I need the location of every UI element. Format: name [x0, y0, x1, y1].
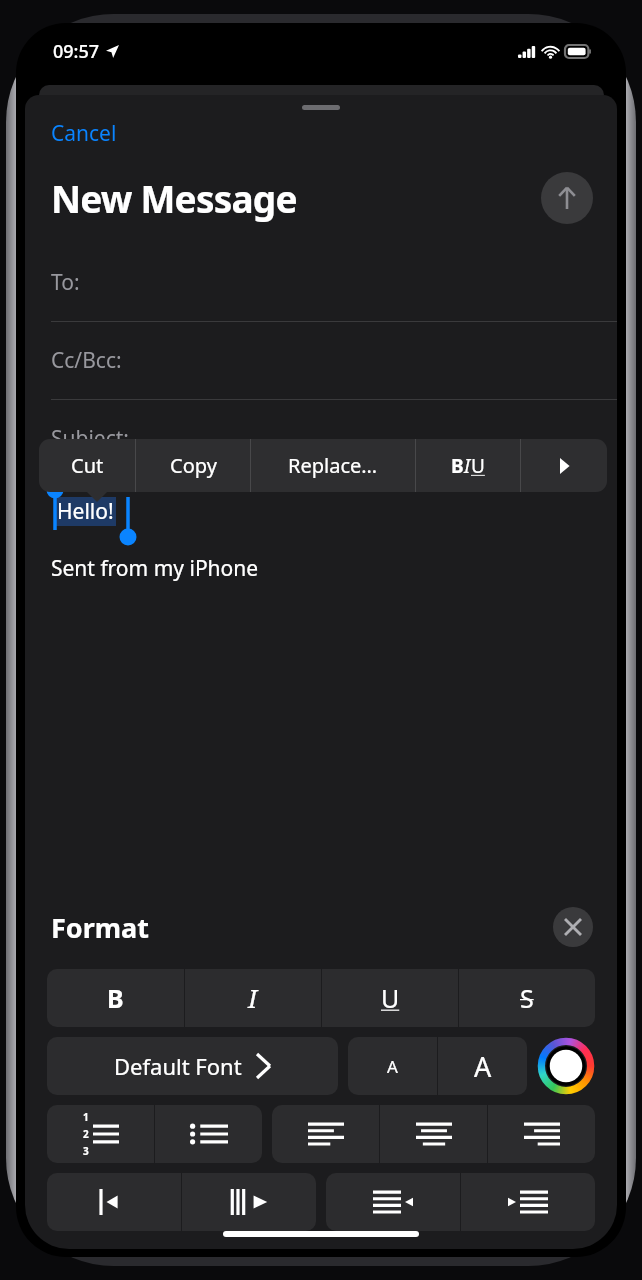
button[interactable]: Decrease indent — [326, 1173, 460, 1231]
staticText: Subject: — [51, 424, 129, 453]
staticText: Sent from my iPhone — [51, 554, 259, 583]
button[interactable]: I — [185, 969, 321, 1027]
staticText: Replace… — [288, 452, 378, 479]
button[interactable]: To: — [25, 244, 617, 322]
staticText: 1 — [83, 1110, 89, 1124]
button[interactable]: Replace… — [251, 439, 415, 492]
button[interactable]: A — [438, 1037, 527, 1095]
button[interactable]: Cancel — [51, 117, 117, 150]
button[interactable]: S — [459, 969, 595, 1027]
button[interactable]: Numbered list — [47, 1105, 154, 1163]
button[interactable]: Cut — [39, 439, 135, 492]
staticText: Cancel — [51, 119, 117, 148]
button[interactable]: A — [348, 1037, 437, 1095]
button[interactable]: B — [47, 969, 184, 1027]
staticText: B — [451, 453, 464, 479]
staticText: To: — [51, 268, 80, 297]
staticText: S — [520, 981, 534, 1015]
staticText: U — [381, 981, 400, 1015]
staticText: A — [387, 1055, 398, 1078]
button[interactable]: Align right — [488, 1105, 595, 1163]
staticText: A — [474, 1048, 492, 1085]
staticText: B — [107, 981, 124, 1015]
staticText: U — [471, 453, 485, 479]
button[interactable]: B — [416, 439, 520, 492]
button[interactable]: Align left — [272, 1105, 379, 1163]
button[interactable]: Close format — [553, 907, 593, 947]
staticText: I — [248, 981, 258, 1015]
button[interactable]: Align center — [380, 1105, 487, 1163]
staticText: Cut — [71, 452, 104, 479]
button[interactable]: Bulleted list — [155, 1105, 262, 1163]
staticText: Format — [51, 909, 149, 946]
staticText: I — [464, 453, 471, 479]
button[interactable]: Text color — [537, 1037, 595, 1095]
staticText: Default Font — [114, 1051, 242, 1081]
button[interactable]: Copy — [136, 439, 250, 492]
staticText: Hello! — [57, 497, 114, 526]
staticText: Copy — [170, 452, 217, 479]
button[interactable]: Cc/Bcc: — [25, 322, 617, 400]
staticText: 3 — [83, 1144, 89, 1158]
button[interactable]: Move right — [182, 1173, 316, 1231]
staticText: New Message — [51, 173, 297, 223]
button[interactable]: Send — [541, 172, 593, 224]
button[interactable]: More — [521, 439, 607, 492]
button[interactable]: Default Font — [47, 1037, 338, 1095]
staticText: Cc/Bcc: — [51, 346, 122, 375]
staticText: 2 — [83, 1127, 89, 1141]
button[interactable]: Move left — [47, 1173, 181, 1231]
button[interactable]: Increase indent — [461, 1173, 595, 1231]
button[interactable]: Subject: — [25, 400, 617, 477]
button[interactable]: U — [322, 969, 458, 1027]
staticText: 09:57 — [53, 39, 100, 64]
